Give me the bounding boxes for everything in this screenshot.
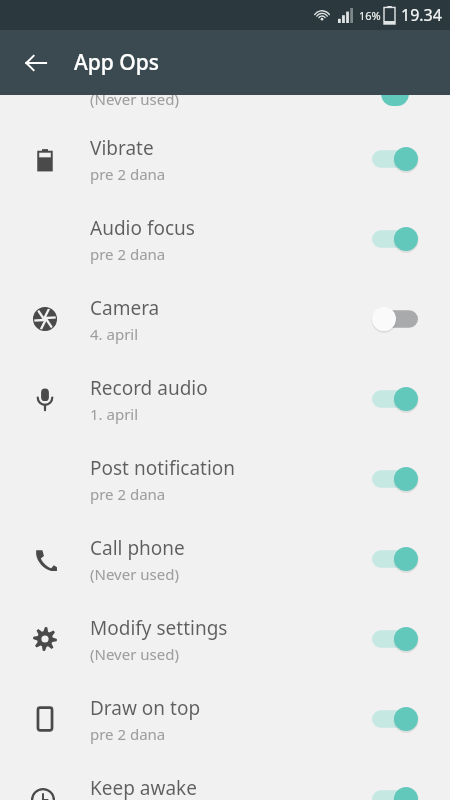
staticText: 16%	[359, 8, 381, 23]
staticText: App Ops	[74, 48, 159, 77]
staticText: (Never used)	[90, 564, 179, 584]
staticText: 19.34	[401, 4, 442, 26]
button[interactable]: Vibrate	[0, 119, 450, 199]
button[interactable]: Post notification toggle	[372, 455, 418, 503]
staticText: pre 2 dana	[90, 164, 166, 184]
button[interactable]: Record audio toggle	[372, 375, 418, 423]
staticText: Post notification	[90, 455, 236, 481]
button[interactable]: Call phone toggle	[372, 535, 418, 583]
staticText: Draw on top	[90, 695, 201, 721]
button[interactable]: Record audio	[0, 359, 450, 439]
staticText: Record audio	[90, 375, 208, 401]
staticText: 4. april	[90, 324, 139, 344]
button[interactable]: Camera toggle	[372, 295, 418, 343]
button[interactable]: Call phone	[0, 519, 450, 599]
staticText: (Never used)	[90, 644, 179, 664]
button[interactable]: Audio focus	[0, 199, 450, 279]
staticText: Audio focus	[90, 215, 195, 241]
staticText: pre 2 dana	[90, 484, 166, 504]
button[interactable]: Vibrate toggle	[372, 135, 418, 183]
button[interactable]: Camera	[0, 279, 450, 359]
staticText: Keep awake	[90, 775, 197, 800]
staticText: pre 2 dana	[90, 244, 166, 264]
staticText: 1. april	[90, 404, 139, 424]
button[interactable]: Post notification	[0, 439, 450, 519]
staticText: (Never used)	[90, 95, 179, 109]
button[interactable]: Back	[12, 39, 60, 87]
staticText: Vibrate	[90, 135, 154, 161]
button[interactable]: Draw on top	[0, 679, 450, 759]
button[interactable]: Audio focus toggle	[372, 215, 418, 263]
button[interactable]: Modify settings toggle	[372, 615, 418, 663]
button[interactable]: Draw on top toggle	[372, 695, 418, 743]
button[interactable]: Modify settings	[0, 599, 450, 679]
staticText: Modify settings	[90, 615, 228, 641]
staticText: Call phone	[90, 535, 185, 561]
staticText: Camera	[90, 295, 160, 321]
staticText: pre 2 dana	[90, 724, 166, 744]
